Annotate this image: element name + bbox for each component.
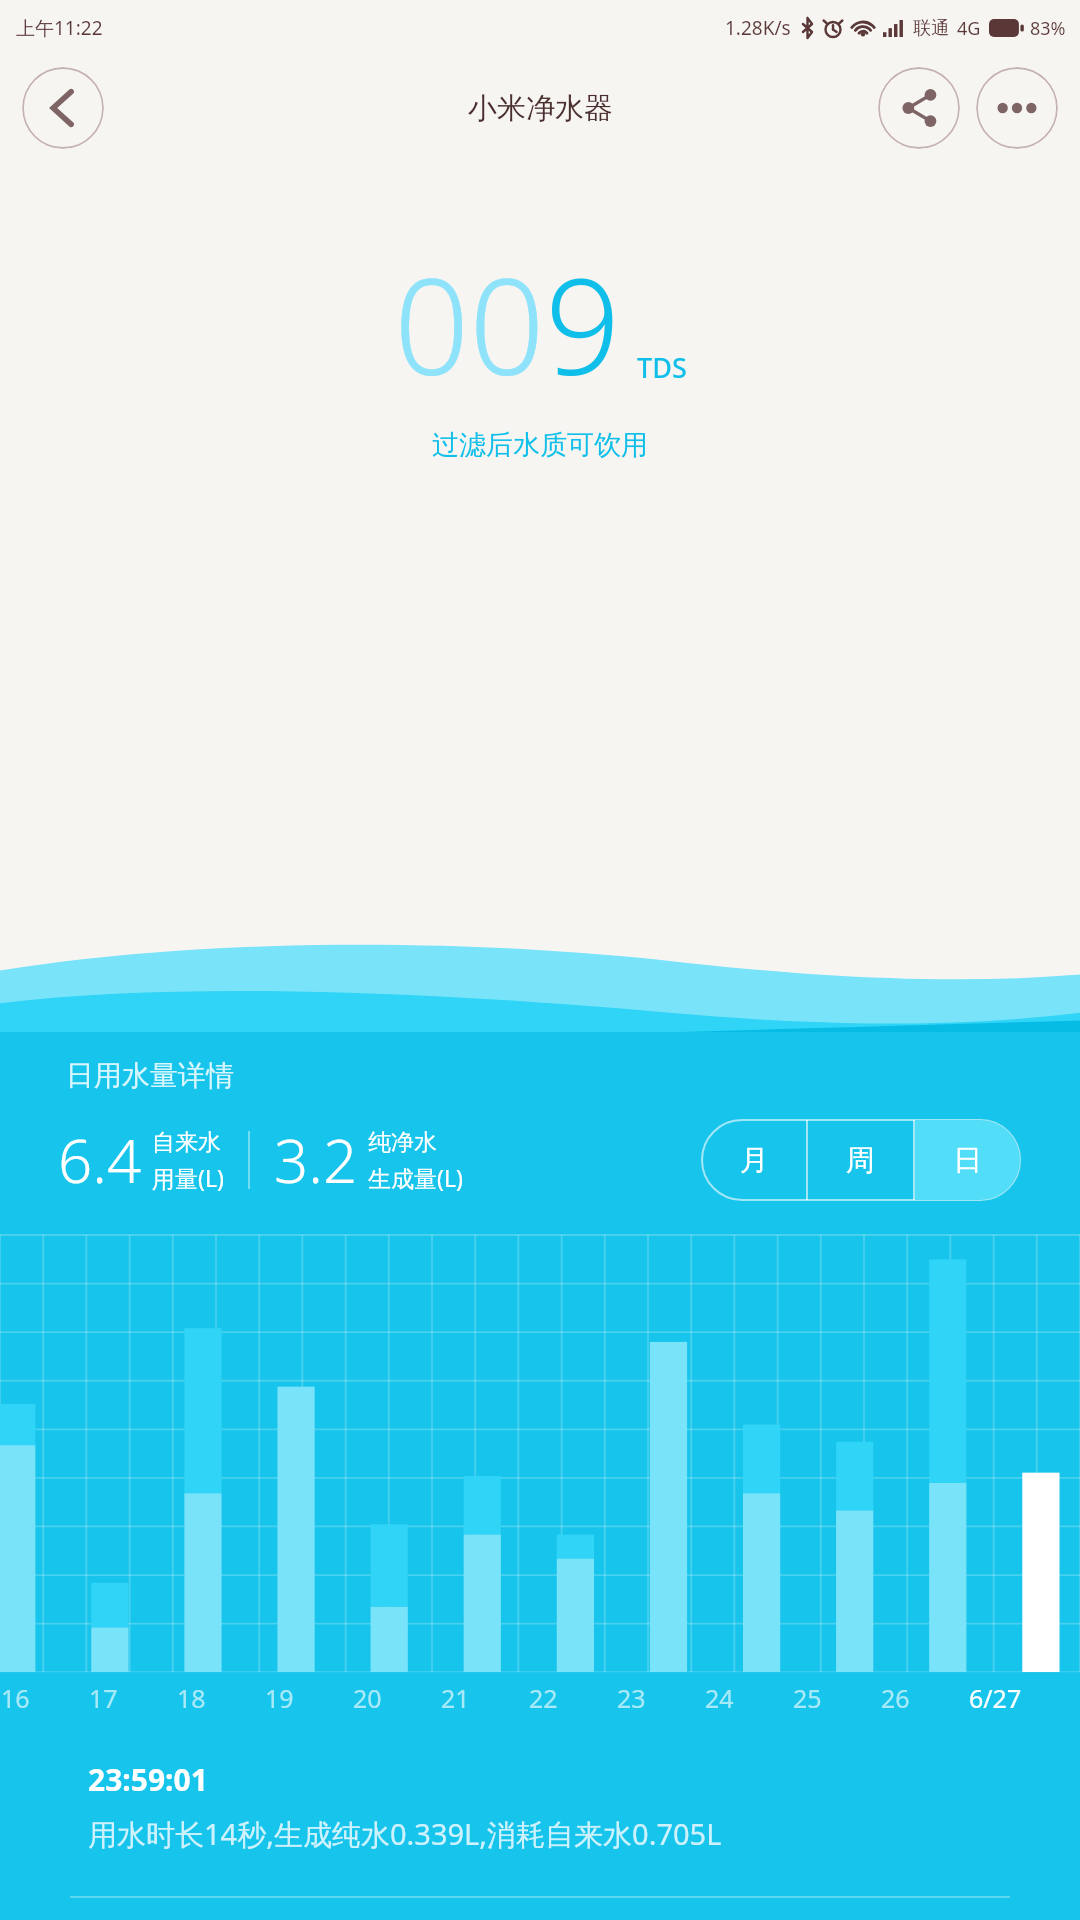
button[interactable]: Share [878,67,960,149]
button[interactable]: 周 [808,1120,913,1200]
staticText: 月 [740,1142,769,1179]
staticText: 00 [394,234,545,414]
staticText: 19 [265,1681,294,1715]
staticText: 83% [1030,16,1066,41]
button[interactable]: 23:59:01 [0,1729,1080,1920]
staticText: 22 [529,1681,558,1715]
staticText: TDS [637,349,687,386]
staticText: 日用水量详情 [66,1058,234,1093]
button[interactable]: More options [976,67,1058,149]
staticText: 用量(L) [152,1162,224,1193]
button[interactable]: 月 [702,1120,806,1200]
staticText: 18 [177,1681,206,1715]
staticText: 3.2 [274,1119,358,1201]
staticText: 20 [353,1681,382,1715]
staticText: 日 [953,1142,982,1179]
staticText: 24 [705,1681,734,1715]
staticText: 25 [793,1681,822,1715]
staticText: 纯净水 [368,1128,437,1157]
staticText: 9 [545,234,621,414]
staticText: 4G [957,16,981,41]
staticText: 21 [441,1681,470,1715]
staticText: 周 [846,1142,875,1179]
staticText: 联通 [913,17,949,40]
staticText: 上午11:22 [16,15,103,41]
staticText: 16 [1,1681,30,1715]
staticText: 6.4 [58,1119,142,1201]
button[interactable]: 日 [915,1120,1020,1200]
staticText: 过滤后水质可饮用 [432,428,648,462]
staticText: 用水时长14秒,生成纯水0.339L,消耗自来水0.705L [88,1814,722,1854]
staticText: 17 [89,1681,118,1715]
staticText: 23:59:01 [88,1759,208,1800]
staticText: 1.28K/s [725,15,791,41]
staticText: 23 [617,1681,646,1715]
staticText: 6/27 [969,1681,1022,1715]
button[interactable]: Back [22,67,104,149]
staticText: 自来水 [152,1128,221,1157]
staticText: 26 [881,1681,910,1715]
staticText: 生成量(L) [368,1162,463,1193]
staticText: 小米净水器 [468,90,613,127]
